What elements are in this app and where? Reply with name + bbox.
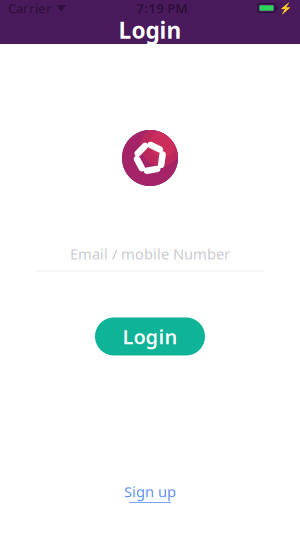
staticText: 7:19 PM xyxy=(136,0,187,17)
button[interactable]: Sign up xyxy=(116,478,184,507)
staticText: Login xyxy=(118,15,181,45)
staticText: Email / mobile Number xyxy=(70,244,230,263)
staticText: Sign up xyxy=(124,482,176,501)
button[interactable]: Login xyxy=(95,317,205,355)
button[interactable]: Email / mobile Number xyxy=(35,242,264,273)
staticText: Login xyxy=(122,323,177,350)
staticText: Carrier xyxy=(8,0,52,17)
staticText: ⚡ xyxy=(279,2,292,14)
